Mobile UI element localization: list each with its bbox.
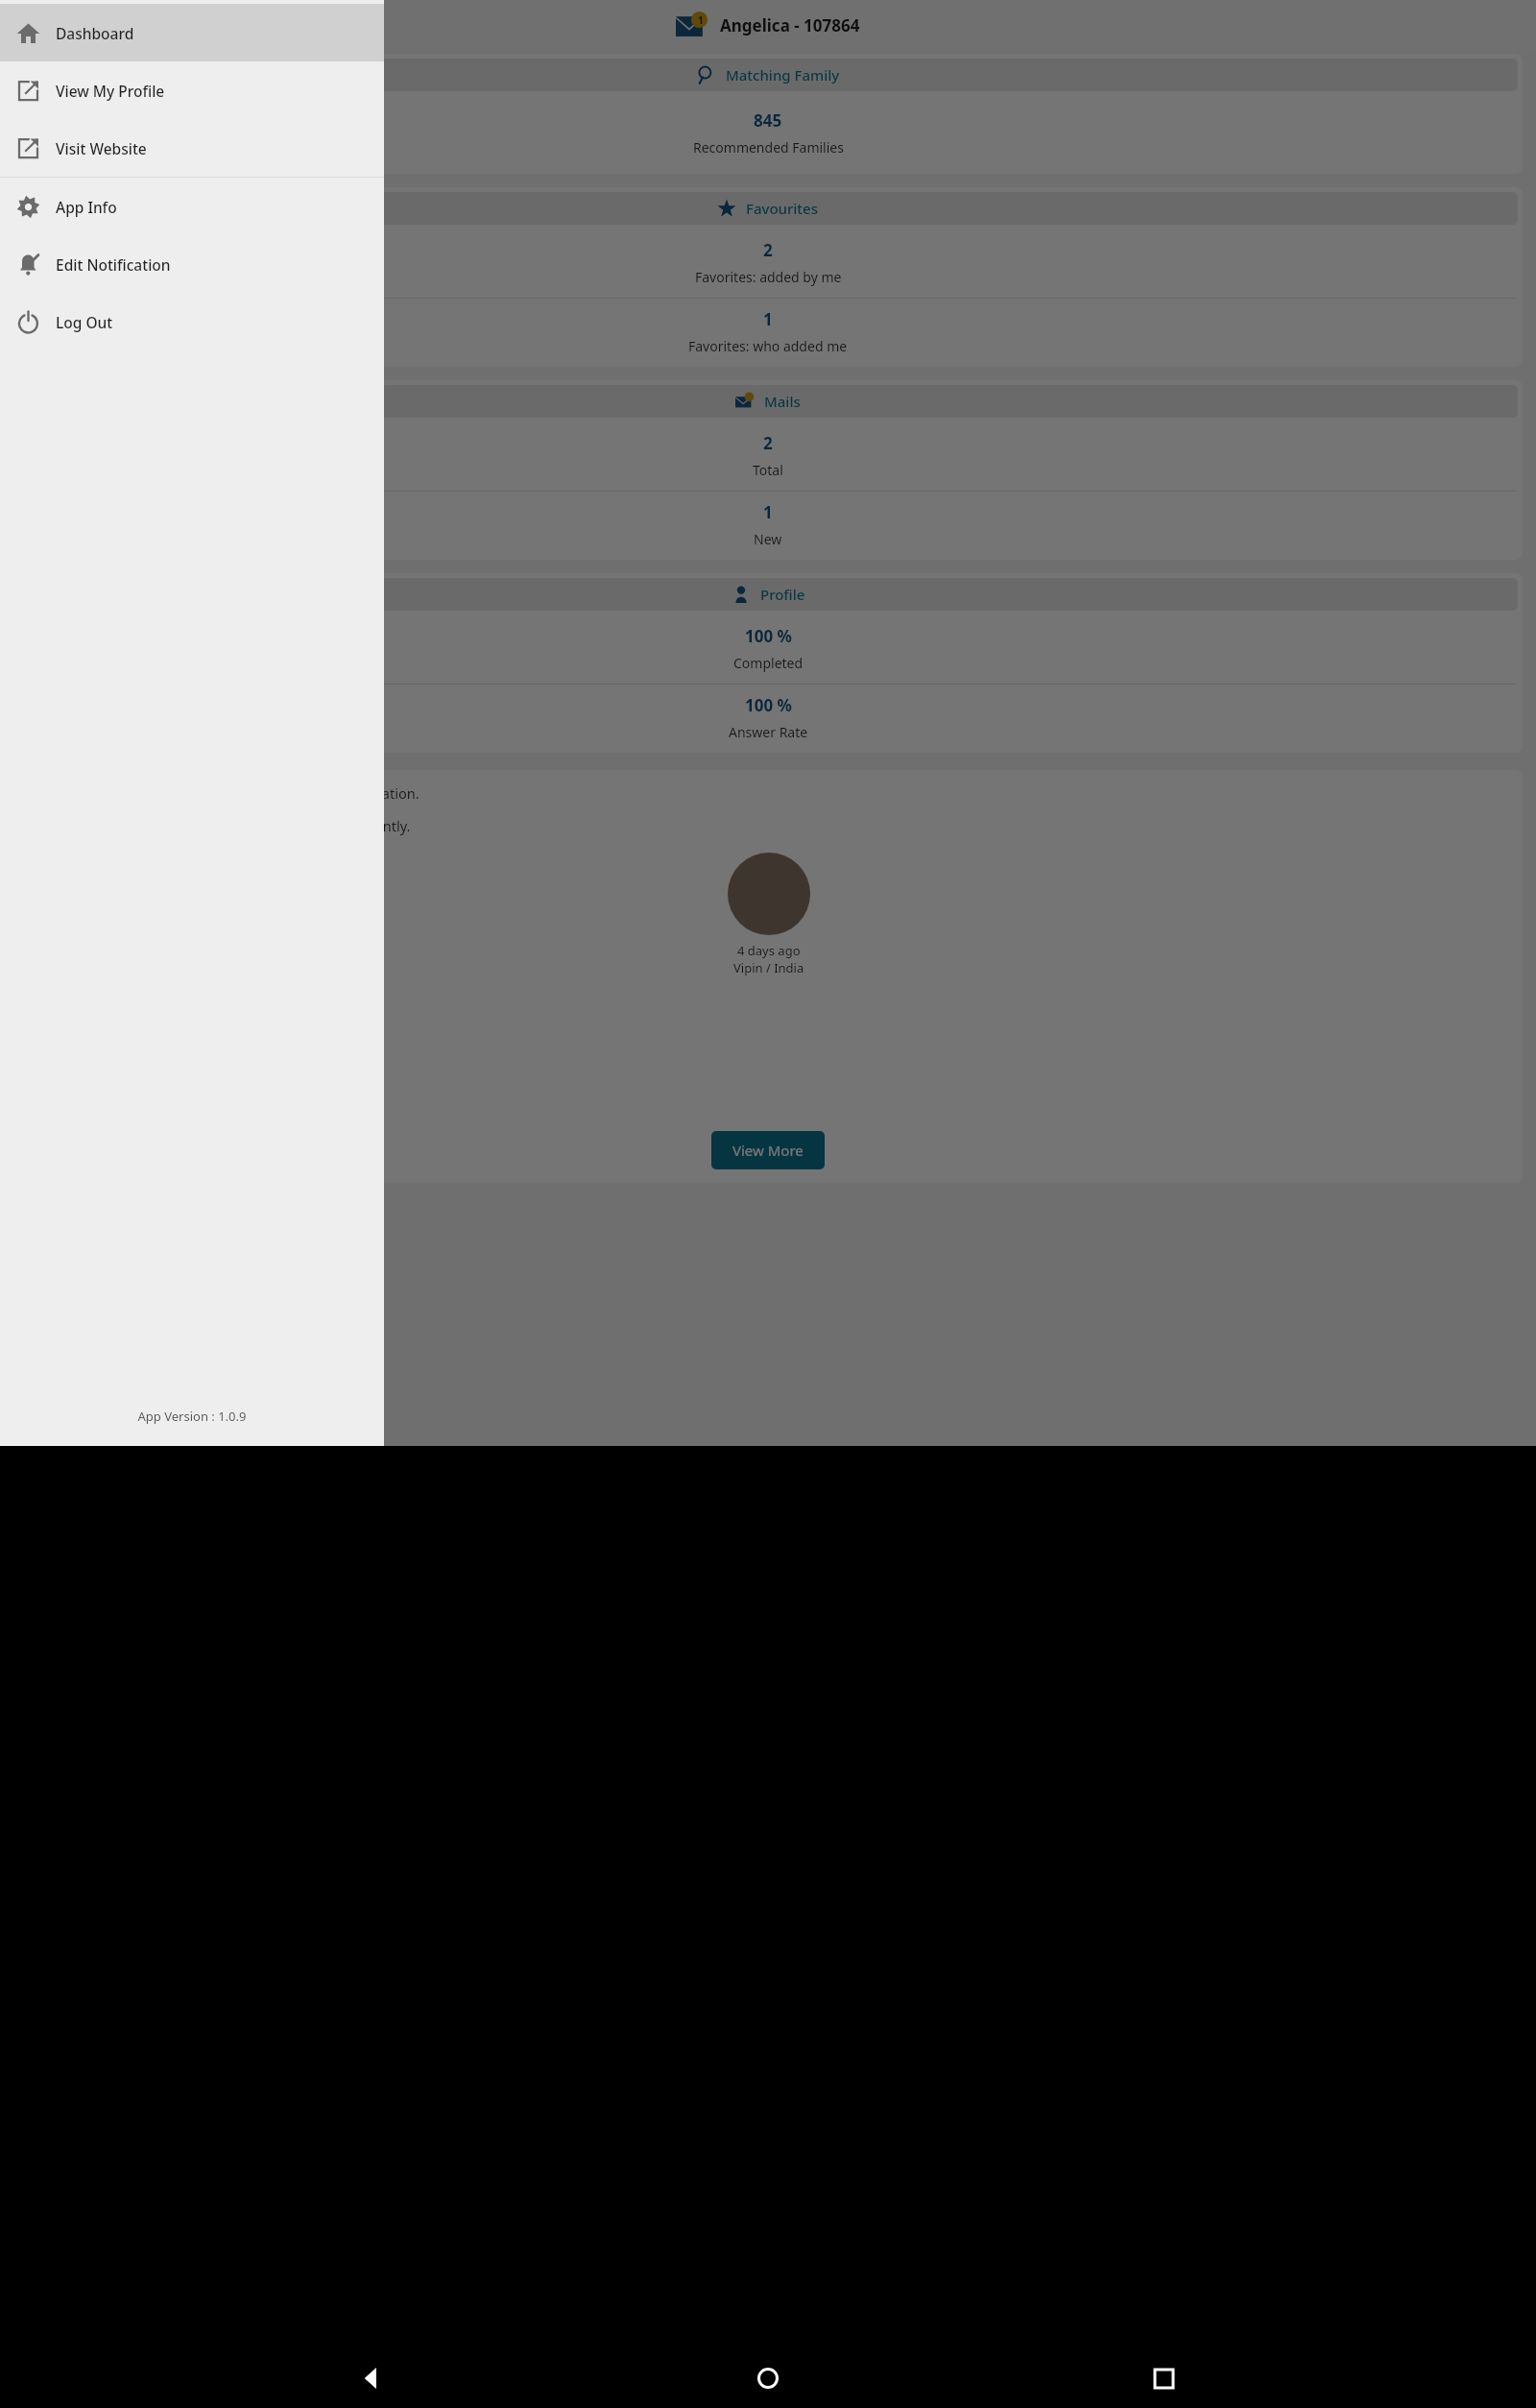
button[interactable]: Log Out [0,293,384,350]
button[interactable]: 1 [13,492,1523,560]
staticText: View More [732,1141,804,1160]
button[interactable]: Back [349,2355,396,2401]
button[interactable]: Home [745,2355,791,2401]
staticText: Mails [764,392,801,411]
button[interactable]: Matching Family [18,59,1518,91]
button[interactable]: Profile [18,578,1518,611]
button[interactable]: Favourites [18,192,1518,225]
staticText: New [754,530,782,548]
button[interactable]: Mails [676,12,708,37]
staticText: Favourites [746,199,819,218]
staticText: Answer Rate [729,723,808,741]
staticText: App Info [56,197,117,217]
staticText: Angelica - 107864 [720,14,860,36]
button[interactable]: Recents [1140,2355,1187,2401]
button[interactable]: Edit Notification [0,235,384,293]
staticText: 2 [763,432,773,454]
button[interactable]: 845 [13,96,1523,174]
staticText: 100 % [745,694,792,716]
staticText: 1 [763,308,773,330]
staticText: Dashboard [56,23,134,43]
staticText: Following are the families that visited … [29,816,411,835]
button[interactable]: 3 days ago [29,853,522,976]
staticText: Recommended Families [693,138,844,157]
staticText: Favorites: added by me [695,268,842,286]
staticText: 1 [763,501,773,523]
button[interactable]: View My Profile [0,61,384,119]
staticText: Visit Website [56,138,147,158]
staticText: Vipin / India [733,959,804,976]
button[interactable]: 1 [13,299,1523,367]
staticText: 845 [754,109,782,132]
staticText: Profile [760,585,805,604]
staticText: 1 [698,13,704,27]
button[interactable]: Mails [18,385,1518,418]
staticText: Completed [733,654,804,672]
staticText: Your profile has been visited 3 times si… [29,783,420,803]
staticText: 4 days ago [737,942,801,959]
button[interactable]: 100 % [13,615,1523,684]
staticText: View My Profile [56,81,165,101]
staticText: Total [753,461,783,479]
staticText: 2 [763,239,773,261]
button[interactable]: App Info [0,178,384,235]
button[interactable]: 2 [13,229,1523,298]
staticText: Log Out [56,312,113,332]
button[interactable]: View More [711,1131,825,1169]
staticText: Edit Notification [56,254,171,275]
button[interactable]: Visit Website [0,119,384,177]
button[interactable]: Dashboard [0,4,384,61]
staticText: Matching Family [726,65,840,84]
button[interactable]: 2 [13,422,1523,491]
staticText: Favorites: who added me [688,337,848,355]
button[interactable]: 4 days ago [522,853,1015,976]
staticText: 100 % [745,625,792,647]
staticText: App Version : 1.0.9 [0,1408,384,1425]
button[interactable]: 8 days ago [29,990,521,1114]
button[interactable]: 100 % [13,685,1523,753]
